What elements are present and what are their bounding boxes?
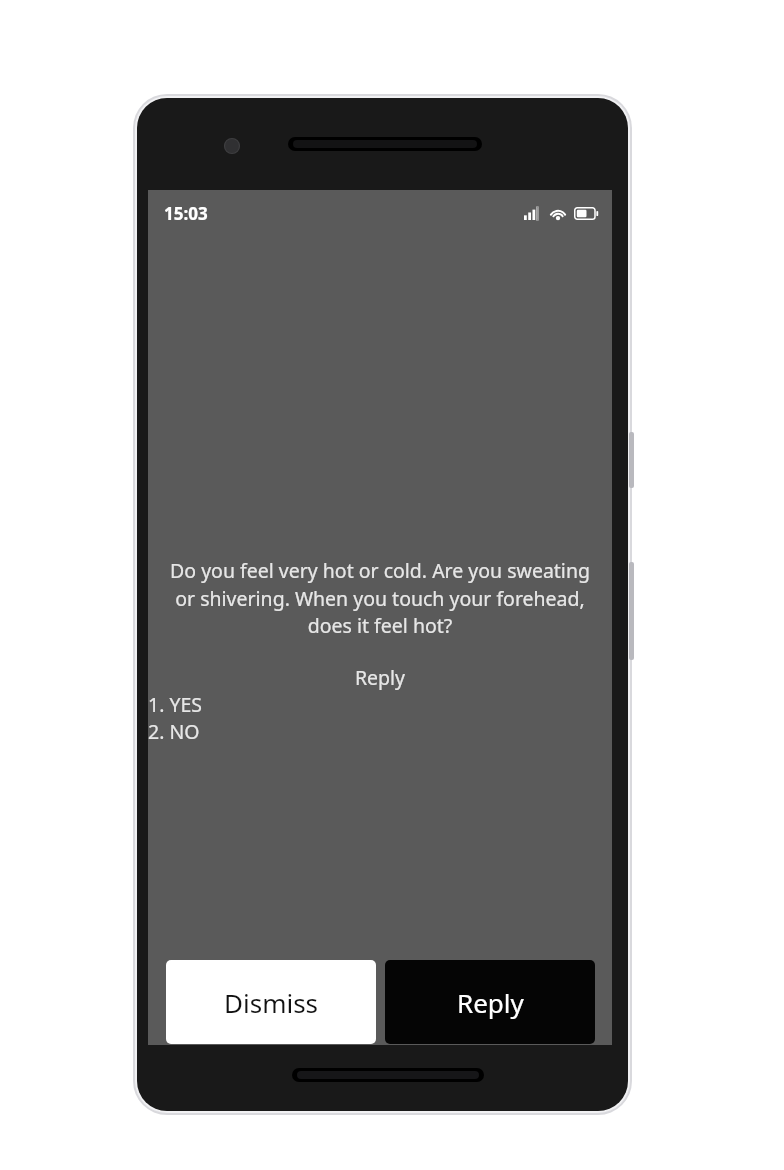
staticText: Reply [457,985,524,1020]
staticText: Do you feel very hot or cold. Are you sw… [160,557,600,638]
button[interactable]: Reply [385,960,595,1044]
staticText: Dismiss [224,985,319,1020]
staticText: Reply [148,664,612,691]
staticText: 2. NO [148,718,200,745]
staticText: 15:03 [164,202,208,225]
button[interactable]: Dismiss [166,960,376,1044]
staticText: 1. YES [148,691,203,718]
